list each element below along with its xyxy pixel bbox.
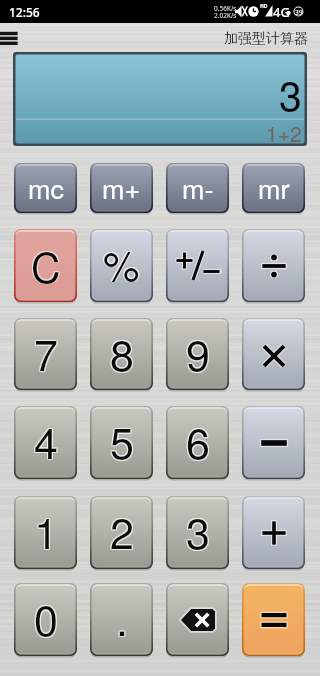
staticText: 1 bbox=[34, 500, 58, 562]
staticText: 1 bbox=[35, 499, 59, 561]
staticText: 4G bbox=[273, 3, 290, 21]
button[interactable]: 0 bbox=[14, 583, 77, 657]
staticText: % bbox=[104, 233, 141, 292]
staticText: . bbox=[116, 587, 128, 649]
button[interactable] bbox=[166, 229, 229, 303]
staticText: 9 bbox=[186, 322, 210, 384]
staticText: 1 bbox=[33, 501, 57, 563]
staticText: 4 bbox=[34, 410, 58, 472]
staticText: 0 bbox=[35, 588, 59, 650]
button[interactable]: 3 bbox=[166, 496, 229, 570]
staticText: 3 bbox=[186, 500, 210, 562]
staticText: HD bbox=[260, 3, 268, 10]
staticText: 6 bbox=[187, 409, 211, 471]
button[interactable]: 1 bbox=[14, 496, 77, 570]
staticText: 加强型计算器 bbox=[224, 30, 308, 48]
staticText: 0.56K/s bbox=[214, 4, 237, 13]
button[interactable]: 8 bbox=[90, 318, 153, 391]
staticText: . bbox=[117, 588, 129, 650]
staticText: 0 bbox=[34, 587, 58, 649]
staticText: 6 bbox=[185, 411, 209, 473]
staticText: 2 bbox=[109, 501, 133, 563]
staticText: 7 bbox=[35, 323, 59, 385]
staticText: 4 bbox=[35, 409, 59, 471]
staticText: mc bbox=[28, 168, 64, 207]
staticText: 3 bbox=[187, 499, 211, 561]
staticText: 3 bbox=[185, 501, 209, 563]
button[interactable]: Backspace bbox=[166, 583, 229, 657]
staticText: . bbox=[117, 586, 129, 648]
button[interactable]: 6 bbox=[166, 406, 229, 480]
staticText: 12:56 bbox=[9, 4, 40, 20]
staticText: 3 bbox=[187, 501, 211, 563]
staticText: 5 bbox=[111, 411, 135, 473]
staticText: 5 bbox=[109, 411, 133, 473]
staticText: 9 bbox=[185, 321, 209, 383]
staticText: C bbox=[32, 236, 62, 295]
staticText: 4 bbox=[33, 411, 57, 473]
staticText: % bbox=[102, 234, 139, 293]
staticText: 0 bbox=[33, 588, 57, 650]
staticText: C bbox=[31, 236, 61, 295]
staticText: 2 bbox=[111, 501, 135, 563]
button[interactable]: 4 bbox=[14, 406, 77, 480]
staticText: 8 bbox=[111, 321, 135, 383]
staticText: 2 bbox=[109, 499, 133, 561]
button[interactable]: C bbox=[14, 229, 77, 303]
staticText: C bbox=[32, 235, 62, 294]
staticText: 2 bbox=[111, 499, 135, 561]
staticText: . bbox=[115, 588, 127, 650]
staticText: . bbox=[115, 586, 127, 648]
staticText: 5 bbox=[111, 409, 135, 471]
staticText: 0 bbox=[33, 586, 57, 648]
staticText: 8 bbox=[110, 322, 134, 384]
button[interactable] bbox=[242, 583, 305, 657]
staticText: 7 bbox=[35, 321, 59, 383]
button[interactable] bbox=[242, 229, 305, 303]
staticText: % bbox=[104, 234, 141, 293]
staticText: mr bbox=[258, 168, 290, 207]
button[interactable]: % bbox=[90, 229, 153, 303]
staticText: 1+2 bbox=[266, 118, 302, 148]
staticText: 6 bbox=[187, 411, 211, 473]
staticText: % bbox=[103, 234, 140, 293]
staticText: 7 bbox=[33, 323, 57, 385]
staticText: C bbox=[30, 235, 60, 294]
button[interactable]: mr bbox=[242, 163, 305, 214]
button[interactable]: 2 bbox=[90, 496, 153, 570]
button[interactable]: m- bbox=[166, 163, 229, 214]
button[interactable] bbox=[242, 318, 305, 391]
staticText: 4 bbox=[35, 411, 59, 473]
staticText: 0 bbox=[35, 586, 59, 648]
staticText: 9 bbox=[185, 323, 209, 385]
button[interactable] bbox=[242, 496, 305, 570]
staticText: 8 bbox=[109, 323, 133, 385]
staticText: % bbox=[102, 233, 139, 292]
staticText: 39 bbox=[295, 8, 303, 17]
staticText: 4 bbox=[33, 409, 57, 471]
staticText: 6 bbox=[186, 410, 210, 472]
staticText: 9 bbox=[187, 321, 211, 383]
staticText: 9 bbox=[187, 323, 211, 385]
staticText: 8 bbox=[109, 321, 133, 383]
staticText: 5 bbox=[109, 409, 133, 471]
staticText: 8 bbox=[111, 323, 135, 385]
staticText: 1 bbox=[33, 499, 57, 561]
staticText: C bbox=[30, 236, 60, 295]
staticText: 2.02K/s bbox=[214, 11, 237, 20]
staticText: 3 bbox=[185, 499, 209, 561]
button[interactable]: Menu bbox=[0, 29, 24, 51]
button[interactable]: . bbox=[90, 583, 153, 657]
button[interactable] bbox=[242, 406, 305, 480]
button[interactable]: 9 bbox=[166, 318, 229, 391]
button[interactable]: 7 bbox=[14, 318, 77, 391]
staticText: 1 bbox=[35, 501, 59, 563]
staticText: 7 bbox=[34, 322, 58, 384]
button[interactable]: mc bbox=[14, 163, 77, 214]
staticText: 6 bbox=[185, 409, 209, 471]
staticText: m+ bbox=[102, 168, 141, 207]
button[interactable]: m+ bbox=[90, 163, 153, 214]
staticText: 3 bbox=[279, 64, 302, 123]
staticText: 5 bbox=[110, 410, 134, 472]
button[interactable]: 5 bbox=[90, 406, 153, 480]
